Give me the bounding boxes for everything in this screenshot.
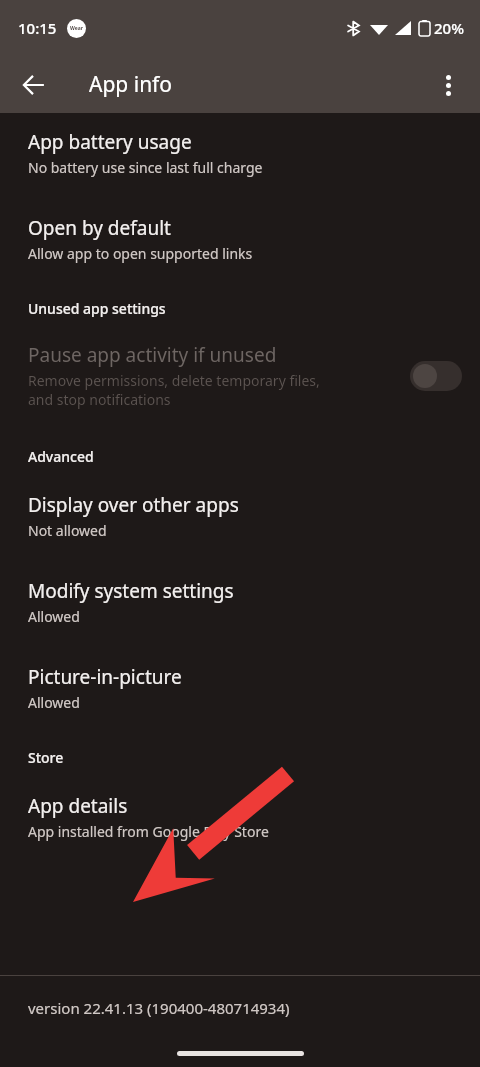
button[interactable]: Display over other apps — [0, 482, 480, 550]
staticText: Not allowed — [28, 521, 107, 540]
staticText: App battery usage — [28, 129, 192, 155]
staticText: Open by default — [28, 215, 171, 241]
staticText: App details — [28, 793, 128, 819]
button[interactable]: Modify system settings — [0, 568, 480, 636]
staticText: 10:15 — [18, 18, 57, 38]
button[interactable]: Open by default — [0, 205, 480, 273]
staticText: Pause app activity if unused — [28, 342, 277, 368]
button[interactable]: App battery usage — [0, 119, 480, 187]
staticText: Picture-in-picture — [28, 664, 182, 690]
button[interactable]: More options — [424, 61, 472, 109]
staticText: Wear — [70, 25, 83, 32]
staticText: App installed from Google Play Store — [28, 822, 269, 841]
button[interactable]: Pause app activity if unused toggle — [410, 361, 462, 391]
staticText: Unused app settings — [28, 299, 166, 318]
button[interactable]: Back — [10, 61, 58, 109]
staticText: Display over other apps — [28, 492, 239, 518]
staticText: App info — [89, 70, 173, 99]
button[interactable]: App details — [0, 783, 480, 851]
staticText: Store — [28, 748, 64, 767]
staticText: No battery use since last full charge — [28, 158, 263, 177]
staticText: Modify system settings — [28, 578, 234, 604]
staticText: Allowed — [28, 693, 80, 712]
staticText: Remove permissions, delete temporary fil… — [28, 371, 320, 409]
button[interactable]: Picture-in-picture — [0, 654, 480, 722]
staticText: 20% — [434, 18, 464, 38]
staticText: version 22.41.13 (190400-480714934) — [28, 998, 290, 1018]
staticText: Advanced — [28, 447, 94, 466]
staticText: Allow app to open supported links — [28, 244, 253, 263]
button[interactable]: Pause app activity if unused — [0, 332, 480, 419]
staticText: Allowed — [28, 607, 80, 626]
